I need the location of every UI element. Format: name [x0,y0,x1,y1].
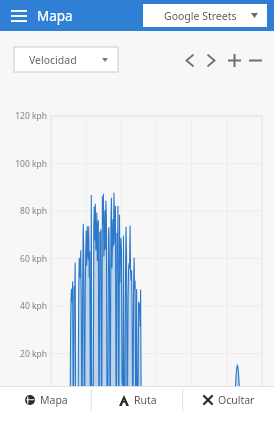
button[interactable]: Ruta [92,386,183,414]
staticText: Google Streets [164,9,237,23]
staticText: 04:00 [75,404,97,416]
button[interactable]: Zoom in [226,52,243,69]
staticText: 80 kph [20,205,47,217]
staticText: 16:00 [181,404,203,416]
staticText: Mapa [40,393,68,407]
button[interactable]: Previous [181,52,198,69]
staticText: 120 kph [15,110,47,122]
button[interactable]: Zoom out [247,52,264,69]
staticText: 20 kph [20,348,47,360]
staticText: 100 kph [15,158,47,170]
staticText: Mapa [37,7,73,25]
button[interactable]: Next [203,52,220,69]
staticText: 40 kph [20,300,47,312]
button[interactable]: Ocultar [183,386,274,414]
staticText: 0 kph [24,395,47,407]
staticText: Ocultar [218,393,255,407]
staticText: 08:00 [110,404,132,416]
staticText: 60 kph [20,253,47,265]
staticText: Velocidad [29,53,77,67]
button[interactable]: Mapa [0,386,92,414]
button[interactable]: Google Streets [143,4,267,27]
button[interactable]: Menu [8,5,30,27]
staticText: Ruta [134,393,157,407]
button[interactable]: Velocidad [14,47,118,72]
